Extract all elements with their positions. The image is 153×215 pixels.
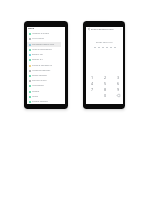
staticText: Google — [32, 90, 40, 93]
other: Backspace — [117, 94, 120, 97]
staticText: Menu — [28, 27, 35, 30]
staticText: 7 — [91, 87, 94, 92]
button[interactable]: 8 — [100, 86, 111, 92]
staticText: Enter Password Here — [91, 28, 114, 31]
button[interactable]: Backspace — [113, 92, 124, 98]
button[interactable]: 7 — [87, 86, 98, 92]
staticText: 9 — [117, 87, 120, 92]
button[interactable]: Security & loca — [27, 78, 65, 83]
button[interactable]: Sound & vibration fx — [27, 63, 65, 68]
button[interactable]: 9 — [113, 86, 124, 92]
button[interactable]: About — [27, 94, 65, 99]
button[interactable]: 4 — [87, 80, 98, 86]
button[interactable]: 5 — [100, 80, 111, 86]
staticText: Enter your PIN — [96, 40, 113, 43]
staticText: Wi-Fi calling — [32, 37, 44, 40]
button[interactable]: Device settings — [27, 73, 65, 78]
staticText: Accessibility — [32, 84, 44, 87]
button[interactable]: Google — [27, 89, 65, 94]
button[interactable]: Display & c — [27, 57, 65, 62]
button[interactable]: 0 — [100, 92, 111, 98]
staticText: 4 — [91, 81, 94, 86]
button[interactable]: Battery life — [27, 52, 65, 57]
button[interactable]: 2 — [100, 74, 111, 80]
staticText: 2 — [104, 75, 107, 80]
button[interactable]: Network & intern — [27, 31, 65, 36]
staticText: 1 — [91, 75, 94, 80]
staticText: System updates — [32, 100, 48, 103]
button[interactable]: 1 — [87, 74, 98, 80]
staticText: 3 — [117, 75, 120, 80]
staticText: Sound & vibration fx — [32, 64, 53, 67]
staticText: Network & intern — [32, 32, 49, 35]
button[interactable]: 6 — [113, 80, 124, 86]
button[interactable]: Back — [86, 27, 91, 31]
button[interactable]: Connected device shar — [27, 42, 65, 47]
button[interactable]: Wi-Fi calling — [27, 36, 65, 41]
staticText: About — [32, 95, 38, 98]
staticText: Security & loca — [32, 79, 47, 82]
staticText: 6 — [117, 81, 120, 86]
button[interactable]: Apps & notifications — [27, 47, 65, 52]
staticText: 0 — [104, 93, 107, 98]
button[interactable]: System updates — [27, 99, 65, 104]
staticText: 8 — [104, 87, 107, 92]
button[interactable]: 3 — [113, 74, 124, 80]
staticText: Device settings — [32, 74, 47, 77]
staticText: Display & c — [32, 58, 43, 61]
staticText: 5 — [104, 81, 107, 86]
button[interactable]: More options — [119, 27, 123, 31]
button[interactable]: Advanced features — [27, 68, 65, 73]
staticText: Advanced features — [32, 69, 51, 72]
staticText: Battery life — [32, 53, 43, 56]
staticText: Connected device shar — [32, 43, 55, 46]
staticText: Apps & notifications — [32, 48, 52, 51]
button[interactable]: Accessibility — [27, 83, 65, 88]
